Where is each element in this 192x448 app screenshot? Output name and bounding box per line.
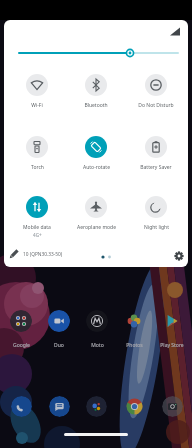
staticText: Play Store xyxy=(160,342,184,349)
staticText: Do Not Disturb xyxy=(138,102,174,109)
staticText: Torch xyxy=(31,164,44,171)
button[interactable] xyxy=(162,396,183,417)
button[interactable]: Night light xyxy=(129,196,183,231)
button[interactable] xyxy=(124,396,145,417)
button[interactable] xyxy=(86,310,108,332)
button[interactable] xyxy=(48,310,70,332)
button[interactable] xyxy=(171,248,187,264)
button[interactable] xyxy=(86,396,107,417)
button[interactable] xyxy=(161,310,183,332)
button[interactable] xyxy=(64,433,128,436)
staticText: Photos xyxy=(126,342,143,349)
button[interactable]: Aeroplane mode xyxy=(69,196,123,231)
staticText: Night light xyxy=(144,224,169,231)
staticText: Bluetooth xyxy=(84,102,108,109)
button[interactable]: Wi-Fi xyxy=(10,74,64,109)
staticText: Mobile data xyxy=(23,224,51,231)
button[interactable]: Mobile data xyxy=(10,196,64,238)
staticText: 10 (QPN30.33-50) xyxy=(23,251,63,258)
staticText: Duo xyxy=(54,342,64,349)
button[interactable]: Bluetooth xyxy=(69,74,123,109)
staticText: Wi-Fi xyxy=(31,102,43,109)
staticText: Battery Saver xyxy=(140,164,172,171)
button[interactable]: Battery Saver xyxy=(129,136,183,171)
button[interactable] xyxy=(11,396,32,417)
button[interactable]: Torch xyxy=(10,136,64,171)
button[interactable] xyxy=(123,310,145,332)
button[interactable]: Auto-rotate xyxy=(69,136,123,171)
button[interactable] xyxy=(6,246,22,262)
staticText: Moto xyxy=(91,342,104,349)
staticText: Aeroplane mode xyxy=(77,224,116,231)
staticText: 4G+ xyxy=(33,232,42,238)
staticText: Auto-rotate xyxy=(83,164,110,171)
button[interactable] xyxy=(10,310,32,332)
button[interactable] xyxy=(49,396,70,417)
staticText: Google xyxy=(13,342,30,349)
button[interactable]: Do Not Disturb xyxy=(129,74,183,109)
